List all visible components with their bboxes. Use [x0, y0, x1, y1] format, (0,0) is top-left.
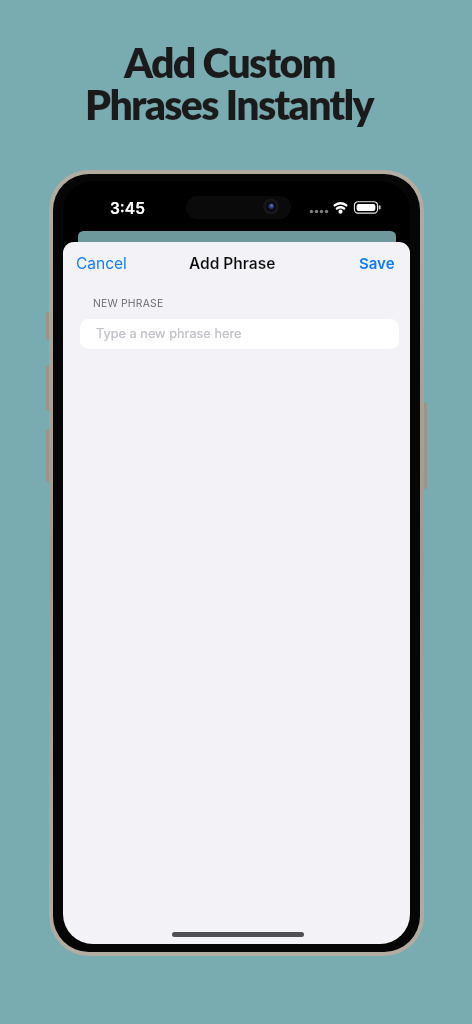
staticText: Add Custom — [124, 38, 335, 87]
button[interactable]: Save — [359, 254, 410, 272]
staticText: Save — [359, 254, 395, 272]
staticText: NEW PHRASE — [93, 297, 164, 310]
staticText: Cancel — [76, 254, 127, 273]
staticText: Phrases Instantly — [85, 80, 373, 129]
button[interactable]: Cancel — [63, 254, 127, 273]
staticText: Type a new phrase here — [96, 326, 242, 341]
staticText: 3:45 — [110, 199, 145, 218]
button[interactable]: Type a new phrase here — [80, 319, 399, 349]
staticText: Add Phrase — [189, 254, 276, 273]
